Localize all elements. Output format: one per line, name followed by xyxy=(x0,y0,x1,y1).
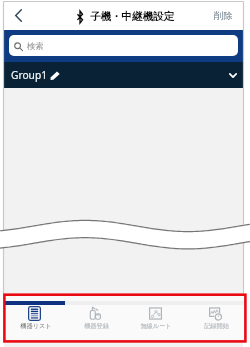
other: Expand xyxy=(229,73,237,78)
button[interactable]: 機器登録 xyxy=(66,306,126,341)
staticText: 子機・中継機設定 xyxy=(90,10,174,23)
button[interactable]: Back xyxy=(4,2,34,30)
staticText: 記録開始 xyxy=(204,322,229,330)
button[interactable]: 削除 xyxy=(214,2,233,30)
staticText: 無線ルート xyxy=(140,322,172,330)
staticText: 検索 xyxy=(27,41,44,51)
button[interactable]: 機器リスト xyxy=(5,306,66,341)
staticText: 削除 xyxy=(214,10,233,22)
button[interactable]: Group1 xyxy=(4,62,243,88)
button[interactable]: 無線ルート xyxy=(126,306,186,341)
button[interactable]: 記録開始 xyxy=(186,306,246,341)
staticText: 機器登録 xyxy=(84,322,109,330)
staticText: 機器リスト xyxy=(20,322,52,330)
staticText: Group1 xyxy=(11,68,47,82)
button[interactable]: 検索 xyxy=(9,35,238,56)
